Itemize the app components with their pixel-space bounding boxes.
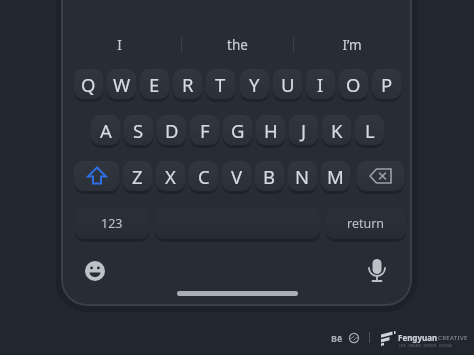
button[interactable]: T: [206, 69, 235, 99]
button[interactable]: [357, 161, 404, 191]
staticText: 123: [101, 215, 123, 232]
staticText: P: [381, 72, 393, 97]
button[interactable]: B: [255, 161, 284, 191]
staticText: X: [165, 164, 176, 189]
staticText: Bē: [331, 332, 343, 344]
staticText: I’m: [342, 36, 362, 54]
staticText: N: [295, 164, 310, 189]
button[interactable]: W: [107, 69, 136, 99]
staticText: the: [227, 36, 248, 54]
button[interactable]: [85, 261, 105, 281]
button[interactable]: S: [124, 115, 153, 145]
staticText: Z: [132, 164, 143, 189]
staticText: LIFE · DREAM · DESIGN · DESIGN: [399, 343, 452, 348]
button[interactable]: A: [91, 115, 120, 145]
button[interactable]: return: [326, 208, 406, 239]
button[interactable]: I’m: [312, 36, 392, 54]
button[interactable]: J: [289, 115, 318, 145]
button[interactable]: [74, 161, 119, 191]
button[interactable]: E: [140, 69, 169, 99]
staticText: M: [327, 164, 344, 189]
button[interactable]: N: [288, 161, 317, 191]
button[interactable]: I: [306, 69, 335, 99]
button[interactable]: U: [273, 69, 302, 99]
staticText: L: [365, 118, 375, 143]
staticText: U: [281, 72, 295, 97]
staticText: J: [301, 118, 307, 143]
staticText: F: [200, 118, 210, 143]
button[interactable]: Y: [240, 69, 269, 99]
button[interactable]: L: [355, 115, 384, 145]
staticText: H: [264, 118, 278, 143]
staticText: Q: [81, 72, 96, 97]
staticText: I: [317, 72, 324, 97]
button[interactable]: D: [157, 115, 186, 145]
staticText: D: [165, 118, 179, 143]
button[interactable]: H: [256, 115, 285, 145]
staticText: E: [149, 72, 160, 97]
staticText: B: [263, 164, 276, 189]
button[interactable]: F: [190, 115, 219, 145]
button[interactable]: O: [339, 69, 368, 99]
staticText: Y: [249, 72, 260, 97]
button[interactable]: 123: [75, 208, 149, 239]
staticText: A: [100, 118, 112, 143]
staticText: I: [117, 36, 122, 54]
staticText: C: [198, 164, 210, 189]
staticText: O: [346, 72, 361, 97]
button[interactable]: P: [372, 69, 401, 99]
staticText: R: [182, 72, 194, 97]
button[interactable]: K: [322, 115, 351, 145]
button[interactable]: C: [189, 161, 218, 191]
staticText: V: [231, 164, 243, 189]
staticText: G: [231, 118, 245, 143]
button[interactable]: V: [222, 161, 251, 191]
button[interactable]: M: [321, 161, 350, 191]
staticText: T: [215, 72, 226, 97]
button[interactable]: I: [79, 36, 159, 54]
button[interactable]: R: [173, 69, 202, 99]
button[interactable]: G: [223, 115, 252, 145]
staticText: K: [331, 118, 343, 143]
button[interactable]: X: [156, 161, 185, 191]
button[interactable]: Z: [123, 161, 152, 191]
button[interactable]: the: [197, 36, 277, 54]
staticText: Fengyuan: [398, 332, 438, 343]
staticText: S: [133, 118, 144, 143]
button[interactable]: Q: [74, 69, 103, 99]
staticText: return: [347, 215, 385, 232]
button[interactable]: [365, 258, 389, 284]
staticText: W: [113, 72, 131, 97]
staticText: CREATIVE: [438, 334, 468, 342]
